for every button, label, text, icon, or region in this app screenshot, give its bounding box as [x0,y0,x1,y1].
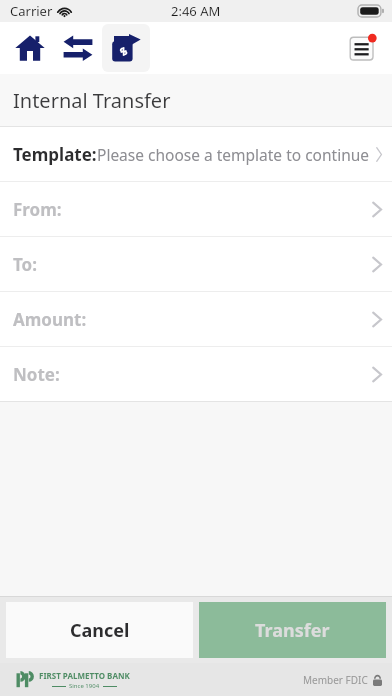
staticText: Transfer [255,618,330,643]
button[interactable]: Home [6,24,54,72]
button[interactable]: Note: [0,347,392,401]
staticText: Internal Transfer [13,87,171,114]
staticText: Please choose a template to continue [97,144,370,165]
staticText: Cancel [70,618,130,643]
button[interactable]: To: [0,237,392,291]
staticText: Template: [13,143,97,166]
staticText: 2:46 AM [171,2,221,20]
staticText: To: [13,253,38,276]
button[interactable]: Cancel [6,602,193,658]
button[interactable]: Amount: [0,292,392,346]
staticText: Since 1904 [69,682,100,690]
button[interactable]: Menu [344,28,384,68]
button[interactable]: Internal Transfer [102,24,150,72]
button[interactable]: Transfer [199,602,386,658]
staticText: Amount: [13,308,87,331]
button[interactable]: Transfers [54,24,102,72]
button[interactable]: Template: [0,127,392,181]
staticText: FIRST PALMETTO BANK [39,670,130,681]
staticText: Carrier [10,2,53,20]
button[interactable]: From: [0,182,392,236]
staticText: Note: [13,363,60,386]
staticText: From: [13,198,62,221]
staticText: Member FDIC [303,673,368,687]
